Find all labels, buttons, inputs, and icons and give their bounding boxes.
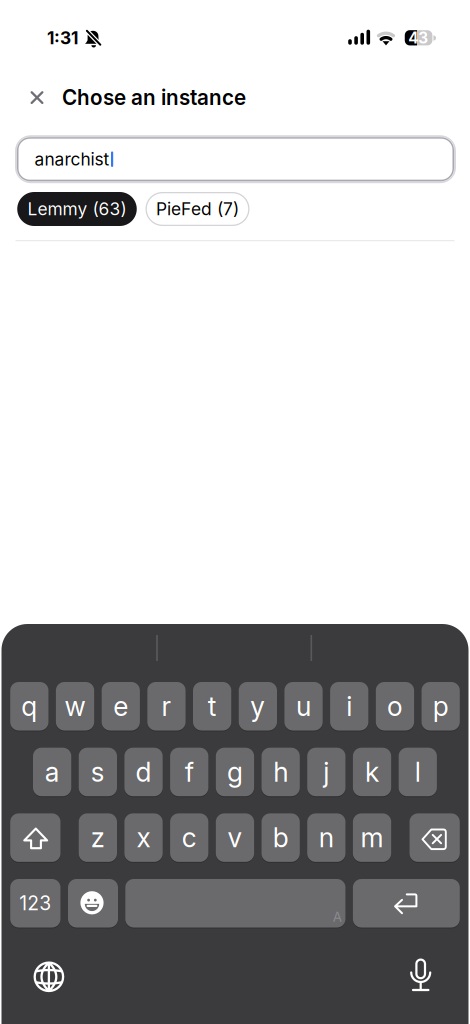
- staticText: 43: [408, 29, 428, 47]
- staticText: e: [113, 690, 128, 722]
- button[interactable]: c: [170, 813, 208, 862]
- button[interactable]: PieFed (7): [145, 192, 249, 226]
- staticText: s: [91, 756, 105, 788]
- staticText: j: [323, 756, 329, 788]
- staticText: anarchist: [34, 149, 109, 170]
- staticText: q: [21, 690, 37, 722]
- staticText: u: [296, 690, 311, 722]
- staticText: d: [136, 756, 152, 788]
- button[interactable]: l: [399, 748, 437, 796]
- staticText: w: [65, 690, 86, 722]
- button[interactable]: Lemmy (63): [17, 192, 137, 226]
- button[interactable]: f: [170, 748, 208, 796]
- button[interactable]: n: [307, 813, 345, 862]
- staticText: c: [182, 821, 197, 854]
- staticText: 123: [19, 892, 51, 915]
- button[interactable]: [401, 952, 441, 996]
- staticText: m: [361, 821, 384, 854]
- button[interactable]: g: [216, 748, 254, 796]
- button[interactable]: h: [261, 748, 300, 796]
- button[interactable]: [353, 879, 460, 927]
- button[interactable]: r: [147, 682, 186, 730]
- button[interactable]: A: [125, 879, 345, 927]
- staticText: i: [346, 690, 352, 722]
- button[interactable]: [17, 78, 57, 118]
- staticText: Lemmy (63): [27, 198, 126, 219]
- staticText: A: [333, 909, 342, 925]
- staticText: r: [161, 690, 171, 722]
- button[interactable]: o: [376, 682, 414, 730]
- button[interactable]: 123: [10, 879, 60, 927]
- staticText: v: [227, 821, 242, 854]
- button[interactable]: u: [284, 682, 323, 730]
- staticText: a: [45, 756, 60, 788]
- button[interactable]: s: [79, 748, 117, 796]
- button[interactable]: m: [353, 813, 391, 862]
- button[interactable]: a: [33, 748, 71, 796]
- button[interactable]: e: [102, 682, 140, 730]
- staticText: p: [433, 690, 449, 722]
- button[interactable]: j: [307, 748, 345, 796]
- button[interactable]: z: [79, 813, 117, 862]
- button[interactable]: b: [261, 813, 300, 862]
- button[interactable]: p: [421, 682, 460, 730]
- button[interactable]: [10, 813, 60, 862]
- button[interactable]: w: [56, 682, 94, 730]
- staticText: x: [137, 821, 151, 854]
- staticText: n: [319, 821, 334, 854]
- staticText: g: [227, 756, 243, 788]
- staticText: 1:31: [47, 27, 78, 48]
- staticText: t: [208, 690, 217, 722]
- button[interactable]: [409, 813, 460, 862]
- staticText: b: [273, 821, 289, 854]
- staticText: o: [387, 690, 403, 722]
- button[interactable]: d: [124, 748, 163, 796]
- button[interactable]: anarchist: [15, 135, 456, 183]
- staticText: PieFed (7): [156, 198, 239, 219]
- button[interactable]: q: [10, 682, 48, 730]
- button[interactable]: v: [216, 813, 254, 862]
- button[interactable]: y: [239, 682, 277, 730]
- staticText: l: [415, 756, 421, 788]
- staticText: Chose an instance: [62, 85, 246, 110]
- staticText: h: [273, 756, 288, 788]
- button[interactable]: k: [353, 748, 391, 796]
- button[interactable]: [29, 957, 69, 997]
- button[interactable]: t: [193, 682, 231, 730]
- staticText: f: [185, 756, 194, 788]
- staticText: k: [365, 756, 379, 788]
- button[interactable]: [68, 879, 118, 927]
- button[interactable]: i: [330, 682, 368, 730]
- staticText: y: [250, 690, 265, 722]
- button[interactable]: x: [124, 813, 163, 862]
- staticText: z: [91, 821, 105, 854]
